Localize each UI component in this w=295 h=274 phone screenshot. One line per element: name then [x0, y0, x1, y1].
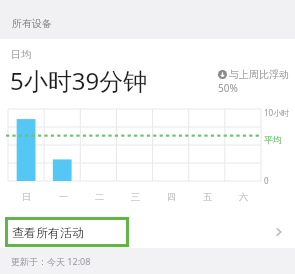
staticText: 50% [218, 81, 238, 95]
staticText: 三 [131, 191, 140, 202]
staticText: 10小时 [264, 107, 290, 118]
staticText: 0 [264, 175, 269, 186]
staticText: 5小时39分钟 [10, 64, 148, 97]
staticText: 日 [22, 191, 31, 202]
staticText: 查看所有活动 [12, 225, 84, 240]
staticText: 日均 [11, 48, 31, 61]
button[interactable]: 查看所有活动 [0, 215, 295, 248]
staticText: 六 [239, 191, 248, 202]
staticText: 五 [203, 191, 212, 202]
other: 下降 [218, 70, 227, 79]
button[interactable]: 所有设备 [0, 0, 295, 39]
staticText: 二 [95, 191, 104, 202]
staticText: 四 [167, 191, 176, 202]
staticText: 与上周比浮动 [229, 68, 289, 81]
staticText: 所有设备 [12, 17, 52, 30]
staticText: 一 [59, 191, 68, 202]
staticText: 平均 [264, 134, 282, 145]
other: 查看所有活动 [273, 226, 285, 238]
staticText: 更新于：今天 12:08 [11, 255, 91, 267]
